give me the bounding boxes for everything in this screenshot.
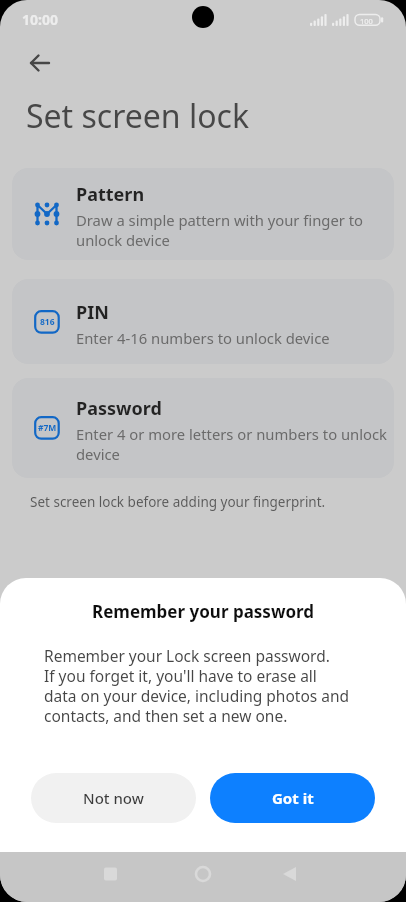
staticText: Remember your Lock screen password. If y…	[44, 645, 350, 726]
button[interactable]: Pattern	[12, 168, 394, 260]
staticText: Password	[76, 396, 162, 421]
staticText: Enter 4 or more letters or numbers to un…	[76, 424, 388, 464]
staticText: Got it	[272, 788, 314, 808]
button[interactable]: #7M	[12, 378, 394, 478]
button[interactable]: Not now	[31, 773, 196, 823]
staticText: PIN	[76, 300, 109, 325]
staticText: Remember your password	[92, 600, 315, 623]
staticText: 816	[40, 316, 55, 328]
button[interactable]	[86, 852, 134, 896]
button[interactable]	[266, 852, 314, 896]
staticText: 100	[360, 16, 373, 26]
staticText: Not now	[83, 788, 144, 808]
staticText: 10:00	[22, 10, 58, 29]
staticText: Set screen lock	[26, 94, 250, 138]
button[interactable]	[179, 852, 227, 896]
button[interactable]: Got it	[210, 773, 375, 823]
staticText: #7M	[38, 422, 57, 434]
staticText: Set screen lock before adding your finge…	[30, 493, 326, 511]
staticText: Pattern	[76, 182, 145, 207]
staticText: Draw a simple pattern with your finger t…	[76, 210, 364, 250]
button[interactable]: 816	[12, 279, 394, 364]
button[interactable]	[28, 51, 52, 75]
staticText: Enter 4-16 numbers to unlock device	[76, 328, 330, 348]
